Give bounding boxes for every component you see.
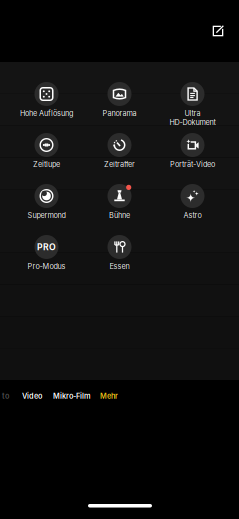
staticText: PRO	[37, 242, 56, 252]
staticText: Mikro-Film	[53, 392, 91, 400]
button[interactable]: Porträt-Video	[156, 133, 229, 182]
staticText: Essen	[109, 262, 129, 271]
button[interactable]: Astro	[156, 184, 229, 233]
staticText: Zeitraffer	[104, 160, 135, 169]
button[interactable]: Video	[19, 388, 45, 404]
button[interactable]: Panorama	[83, 82, 156, 131]
staticText: Bühne	[109, 211, 130, 220]
button[interactable]: Mehr	[97, 388, 121, 404]
staticText: Pro-Modus	[27, 262, 65, 271]
staticText: Astro	[183, 211, 201, 220]
button[interactable]: Zeitraffer	[83, 133, 156, 182]
button[interactable]: Bühne	[83, 184, 156, 233]
staticText: Mehr	[100, 392, 118, 400]
staticText: Zeitlupe	[33, 160, 60, 169]
button[interactable]: Essen	[83, 235, 156, 284]
button[interactable]: Ultra	[156, 82, 229, 131]
staticText: Video	[22, 392, 42, 400]
button[interactable]: Supermond	[10, 184, 83, 233]
button[interactable]: PRO	[10, 235, 83, 284]
staticText: Ultra	[184, 109, 200, 118]
button[interactable]: Mikro-Film	[50, 388, 94, 404]
button[interactable]: Zeitlupe	[10, 133, 83, 182]
button[interactable]: Hohe Auflösung	[10, 82, 83, 131]
button[interactable]: Modi bearbeiten	[204, 18, 232, 44]
staticText: Porträt-Video	[170, 160, 215, 169]
staticText: Panorama	[102, 109, 136, 118]
staticText: HD-Dokument	[169, 118, 215, 127]
staticText: to	[2, 392, 9, 400]
staticText: Hohe Auflösung	[20, 109, 73, 118]
staticText: Supermond	[27, 211, 65, 220]
